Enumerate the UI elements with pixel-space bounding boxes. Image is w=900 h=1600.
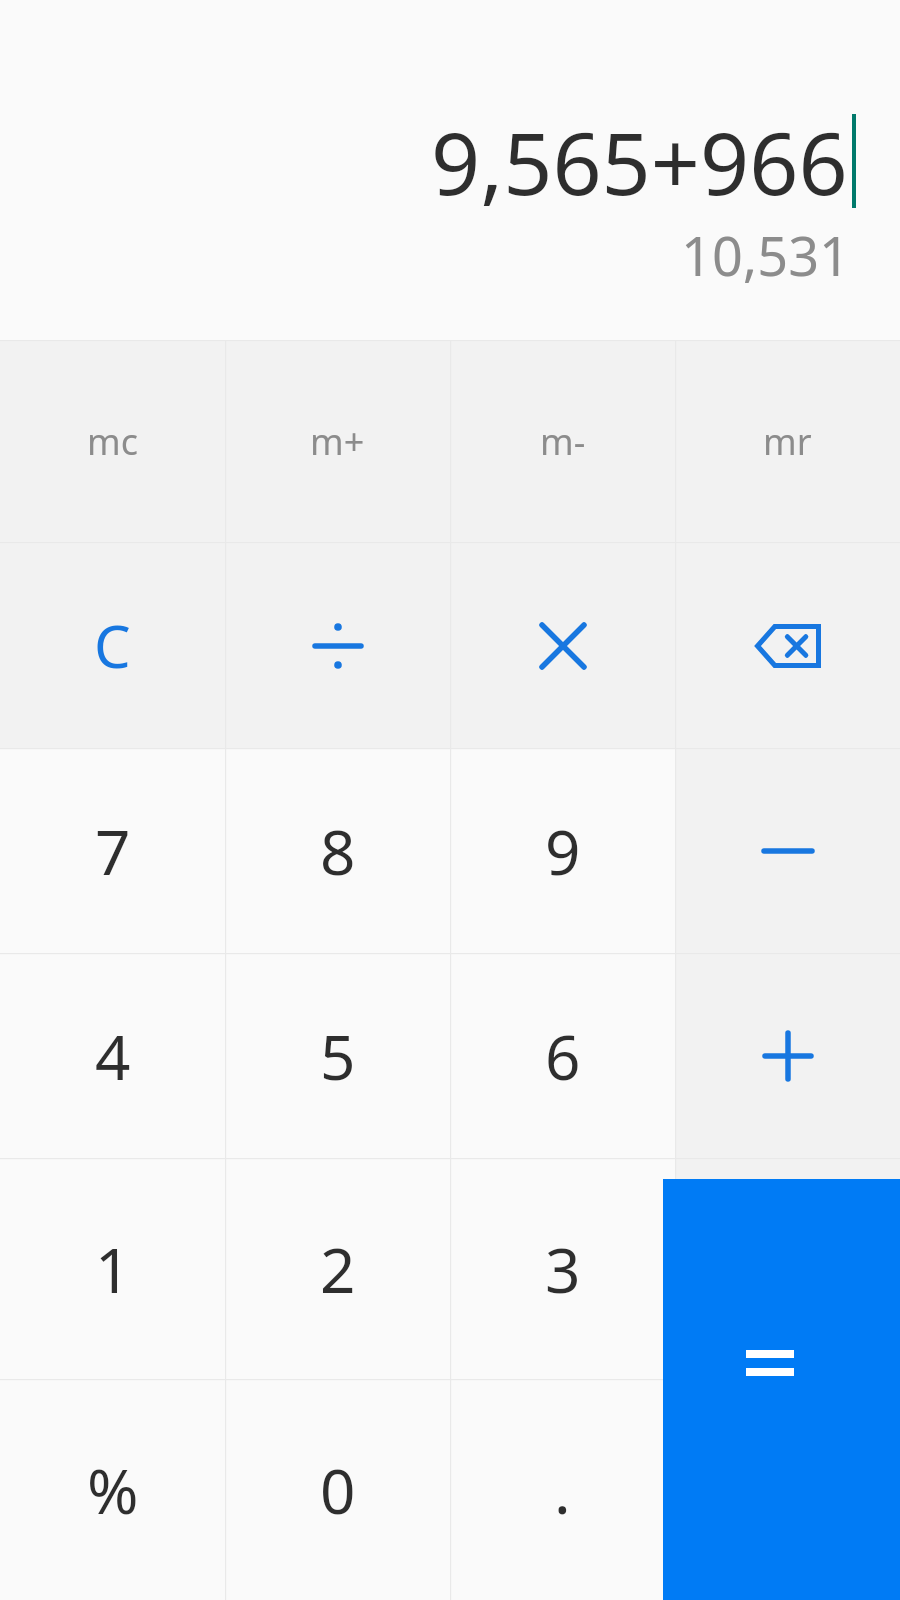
button[interactable]: Divide — [225, 543, 450, 748]
button[interactable]: mr — [675, 341, 900, 542]
button[interactable]: 1 — [0, 1159, 225, 1379]
button[interactable]: 0 — [225, 1380, 450, 1600]
staticText: 7 — [95, 809, 131, 893]
staticText: m- — [540, 417, 586, 466]
button[interactable]: C — [0, 543, 225, 748]
button[interactable]: 7 — [0, 749, 225, 953]
button[interactable]: 3 — [450, 1159, 675, 1379]
staticText: mc — [87, 417, 138, 466]
button[interactable]: 5 — [225, 954, 450, 1158]
button[interactable]: % — [0, 1380, 225, 1600]
button[interactable]: m+ — [225, 341, 450, 542]
button[interactable]: Add — [675, 954, 900, 1158]
button[interactable]: 8 — [225, 749, 450, 953]
button[interactable]: . — [450, 1380, 675, 1600]
staticText: 3 — [545, 1227, 581, 1311]
staticText: 4 — [95, 1014, 131, 1098]
staticText: 8 — [320, 809, 356, 893]
staticText: 9,565+966 — [431, 103, 848, 220]
button[interactable]: 4 — [0, 954, 225, 1158]
button[interactable]: mc — [0, 341, 225, 542]
staticText: 5 — [320, 1014, 356, 1098]
staticText: 10,531 — [681, 218, 850, 290]
button[interactable]: Multiply — [450, 543, 675, 748]
button[interactable]: Equals — [663, 1179, 900, 1600]
staticText: 6 — [545, 1014, 581, 1098]
staticText: mr — [763, 417, 812, 466]
staticText: 2 — [320, 1227, 356, 1311]
staticText: C — [94, 606, 131, 685]
staticText: 1 — [95, 1227, 131, 1311]
button[interactable]: Backspace — [675, 543, 900, 748]
staticText: 0 — [320, 1448, 356, 1532]
button[interactable]: 6 — [450, 954, 675, 1158]
staticText: % — [87, 1448, 139, 1532]
staticText: m+ — [310, 417, 365, 466]
button[interactable]: 2 — [225, 1159, 450, 1379]
staticText: . — [554, 1448, 571, 1532]
button[interactable]: 9 — [450, 749, 675, 953]
button[interactable]: Subtract — [675, 749, 900, 953]
button[interactable]: m- — [450, 341, 675, 542]
staticText: 9 — [545, 809, 581, 893]
